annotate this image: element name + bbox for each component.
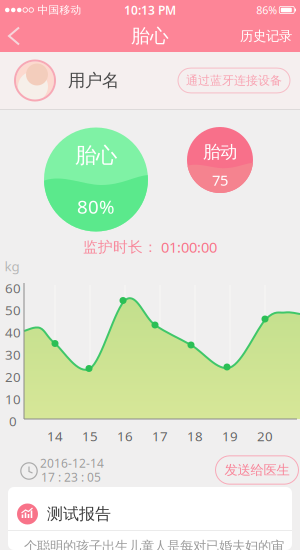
staticText: 20 <box>5 368 21 386</box>
staticText: 18 <box>187 427 203 445</box>
staticText: 10 <box>5 390 21 408</box>
button[interactable]: 测试报告 <box>8 487 292 550</box>
staticText: 胎动 <box>203 141 237 163</box>
staticText: 14 <box>47 427 63 445</box>
staticText: 中国移动 <box>37 3 81 16</box>
staticText: 历史记录 <box>240 28 292 44</box>
staticText: 19 <box>222 427 238 445</box>
staticText: 0 <box>9 412 17 430</box>
staticText: 50 <box>5 301 21 319</box>
staticText: 60 <box>5 279 21 297</box>
staticText: 个聪明的孩子出生儿童人是每对已婚夫妇的审定 <box>24 538 284 550</box>
staticText: 40 <box>5 323 21 341</box>
staticText: 胎心 <box>131 24 169 47</box>
staticText: 17 <box>152 427 168 445</box>
staticText: 80% <box>77 194 115 219</box>
button[interactable]: 发送给医生 <box>215 456 298 484</box>
staticText: 30 <box>5 346 21 363</box>
staticText: 测试报告 <box>47 504 111 524</box>
staticText: kg <box>4 257 19 275</box>
staticText: 10:13 PM <box>124 2 176 18</box>
staticText: 发送给医生 <box>224 462 289 478</box>
staticText: 16 <box>117 427 133 445</box>
button[interactable]: 历史记录 <box>240 19 300 53</box>
staticText: 17 : 23 : 05 <box>41 469 101 485</box>
button[interactable]: 通过蓝牙连接设备 <box>178 68 290 93</box>
staticText: 86% <box>256 3 277 17</box>
staticText: 15 <box>82 427 98 445</box>
staticText: 用户名 <box>68 70 119 91</box>
staticText: 2016-12-14 <box>40 455 104 471</box>
staticText: 通过蓝牙连接设备 <box>186 73 282 88</box>
staticText: 75 <box>212 170 228 190</box>
button[interactable]: Back <box>0 20 29 51</box>
staticText: 20 <box>257 427 273 445</box>
staticText: 胎心 <box>75 142 117 169</box>
staticText: 监护时长： <box>83 238 158 256</box>
staticText: 01:00:00 <box>161 237 217 257</box>
